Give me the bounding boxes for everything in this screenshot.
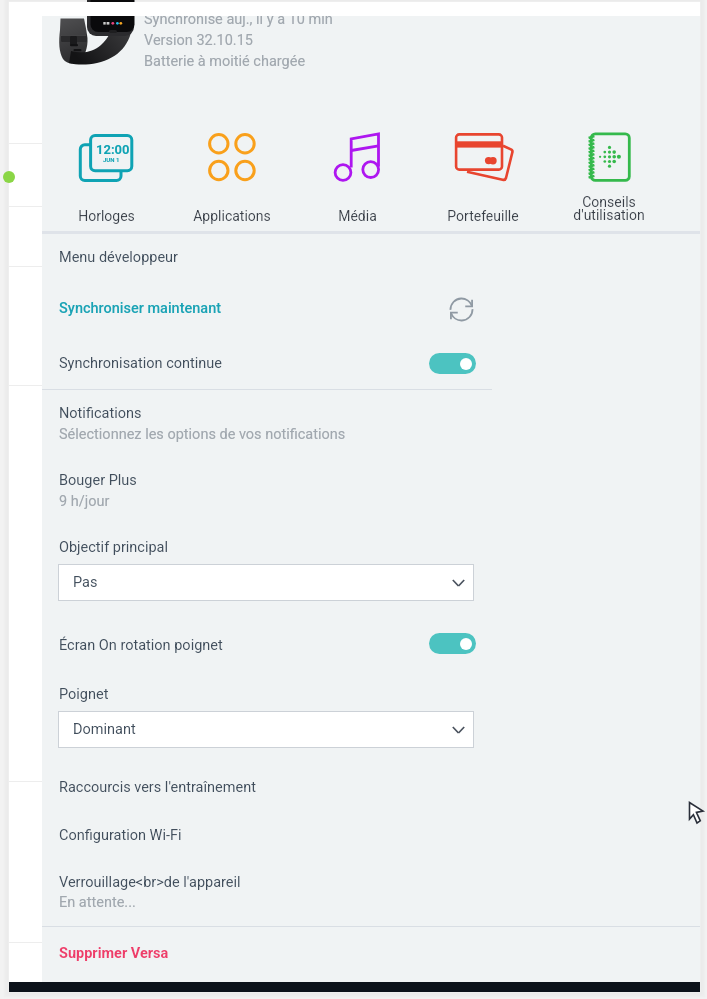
staticText: Média: [338, 208, 377, 224]
button[interactable]: Synchroniser: [448, 296, 475, 323]
staticText: Bouger Plus: [59, 472, 137, 489]
button[interactable]: [42, 338, 700, 388]
staticText: Supprimer Versa: [59, 945, 169, 962]
button[interactable]: [42, 813, 700, 855]
button[interactable]: Portefeuille: [421, 118, 545, 230]
staticText: Version 32.10.15: [144, 32, 253, 49]
staticText: Portefeuille: [447, 208, 519, 224]
button[interactable]: Activé: [429, 633, 476, 654]
staticText: Conseils d'utilisation: [573, 194, 645, 224]
button[interactable]: [42, 766, 700, 808]
staticText: 12:00: [96, 142, 130, 157]
staticText: 9 h/jour: [59, 493, 110, 510]
staticText: Synchroniser maintenant: [59, 300, 222, 317]
staticText: Synchronisé auj., il y a 10 min: [144, 11, 333, 28]
staticText: Batterie à moitié chargée: [144, 53, 306, 70]
button[interactable]: Conseils d'utilisation: [547, 118, 671, 230]
button[interactable]: [42, 466, 700, 511]
button[interactable]: [42, 628, 700, 662]
button[interactable]: [42, 283, 700, 333]
staticText: Objectif principal: [59, 539, 169, 556]
staticText: Notifications: [59, 405, 142, 422]
button[interactable]: Applications: [170, 118, 294, 230]
staticText: Horloges: [78, 208, 135, 224]
staticText: Raccourcis vers l'entraînement: [59, 779, 256, 796]
staticText: Écran On rotation poignet: [59, 637, 223, 654]
staticText: Configuration Wi-Fi: [59, 827, 182, 844]
button[interactable]: [42, 863, 700, 918]
staticText: Synchronisation continue: [59, 355, 222, 372]
staticText: Sélectionnez les options de vos notifica…: [59, 426, 346, 443]
button[interactable]: 12:00: [44, 118, 168, 230]
staticText: Poignet: [59, 686, 109, 703]
button[interactable]: Activé: [429, 353, 476, 374]
staticText: JUN 1: [103, 156, 120, 163]
button[interactable]: [42, 932, 700, 976]
staticText: Menu développeur: [59, 249, 179, 266]
button[interactable]: Pas: [58, 564, 474, 601]
button[interactable]: Média: [295, 118, 419, 230]
staticText: En attente...: [59, 894, 136, 911]
staticText: Applications: [193, 208, 271, 224]
staticText: Dominant: [73, 721, 136, 738]
button[interactable]: [42, 398, 700, 443]
staticText: Verrouillage<br>de l'appareil: [59, 874, 241, 891]
button[interactable]: Dominant: [58, 711, 474, 748]
staticText: Pas: [73, 574, 98, 591]
button[interactable]: [42, 236, 700, 278]
